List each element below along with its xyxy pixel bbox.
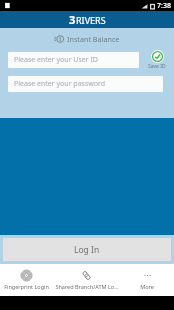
button[interactable]: Fingerprint Login (0, 264, 53, 296)
staticText: Log In (74, 244, 100, 256)
button[interactable]: Please enter your password (8, 76, 163, 92)
staticText: Fingerprint Login (4, 283, 49, 290)
button[interactable]: Log In (3, 238, 171, 261)
staticText: 7:38 (157, 1, 171, 11)
staticText: Shared Branch/ATM Lo... (55, 283, 119, 290)
staticText: More (140, 283, 154, 290)
button[interactable]: Please enter your User ID (8, 52, 139, 68)
button[interactable]: Instant Balance (0, 32, 174, 45)
button[interactable]: More (120, 264, 174, 296)
staticText: Please enter your password (14, 79, 106, 89)
button[interactable]: Shared Branch ATM Locator (53, 264, 120, 296)
button[interactable]: Save ID (143, 50, 171, 70)
staticText: Save ID (148, 63, 166, 70)
staticText: Please enter your User ID (14, 55, 98, 65)
staticText: 3 (69, 12, 76, 27)
staticText: Instant Balance (67, 34, 120, 44)
staticText: RIVERS (76, 14, 106, 26)
